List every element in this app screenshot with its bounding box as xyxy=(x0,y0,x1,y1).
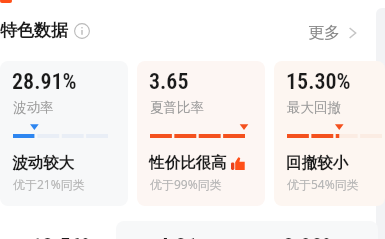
staticText: 特色数据 xyxy=(0,20,68,41)
staticText: 优于99%同类 xyxy=(150,176,222,192)
button[interactable]: 更多 xyxy=(308,23,357,43)
staticText: 波动较大 xyxy=(12,153,74,173)
staticText: 8.90% xyxy=(283,234,337,239)
staticText: 28.91% xyxy=(12,69,77,95)
staticText: 12.56% xyxy=(31,234,96,239)
staticText: 夏普比率 xyxy=(150,99,204,116)
button[interactable]: 15.30% xyxy=(274,61,385,206)
staticText: 性价比很高 xyxy=(149,153,227,173)
staticText: 4.21 xyxy=(158,234,198,239)
staticText: 波动率 xyxy=(13,99,54,116)
staticText: 最大回撤 xyxy=(287,99,341,116)
button[interactable]: 28.91% xyxy=(0,61,128,206)
other: Info xyxy=(74,23,90,39)
button[interactable]: 3.65 xyxy=(137,61,265,206)
staticText: 优于21%同类 xyxy=(13,176,85,192)
staticText: 3.65 xyxy=(149,69,189,95)
staticText: 优于54%同类 xyxy=(287,176,359,192)
staticText: 回撤较小 xyxy=(286,153,348,173)
staticText: 更多 xyxy=(308,23,340,43)
button[interactable]: 特色数据 xyxy=(0,20,90,41)
staticText: 15.30% xyxy=(286,69,351,95)
button[interactable] xyxy=(116,221,378,239)
